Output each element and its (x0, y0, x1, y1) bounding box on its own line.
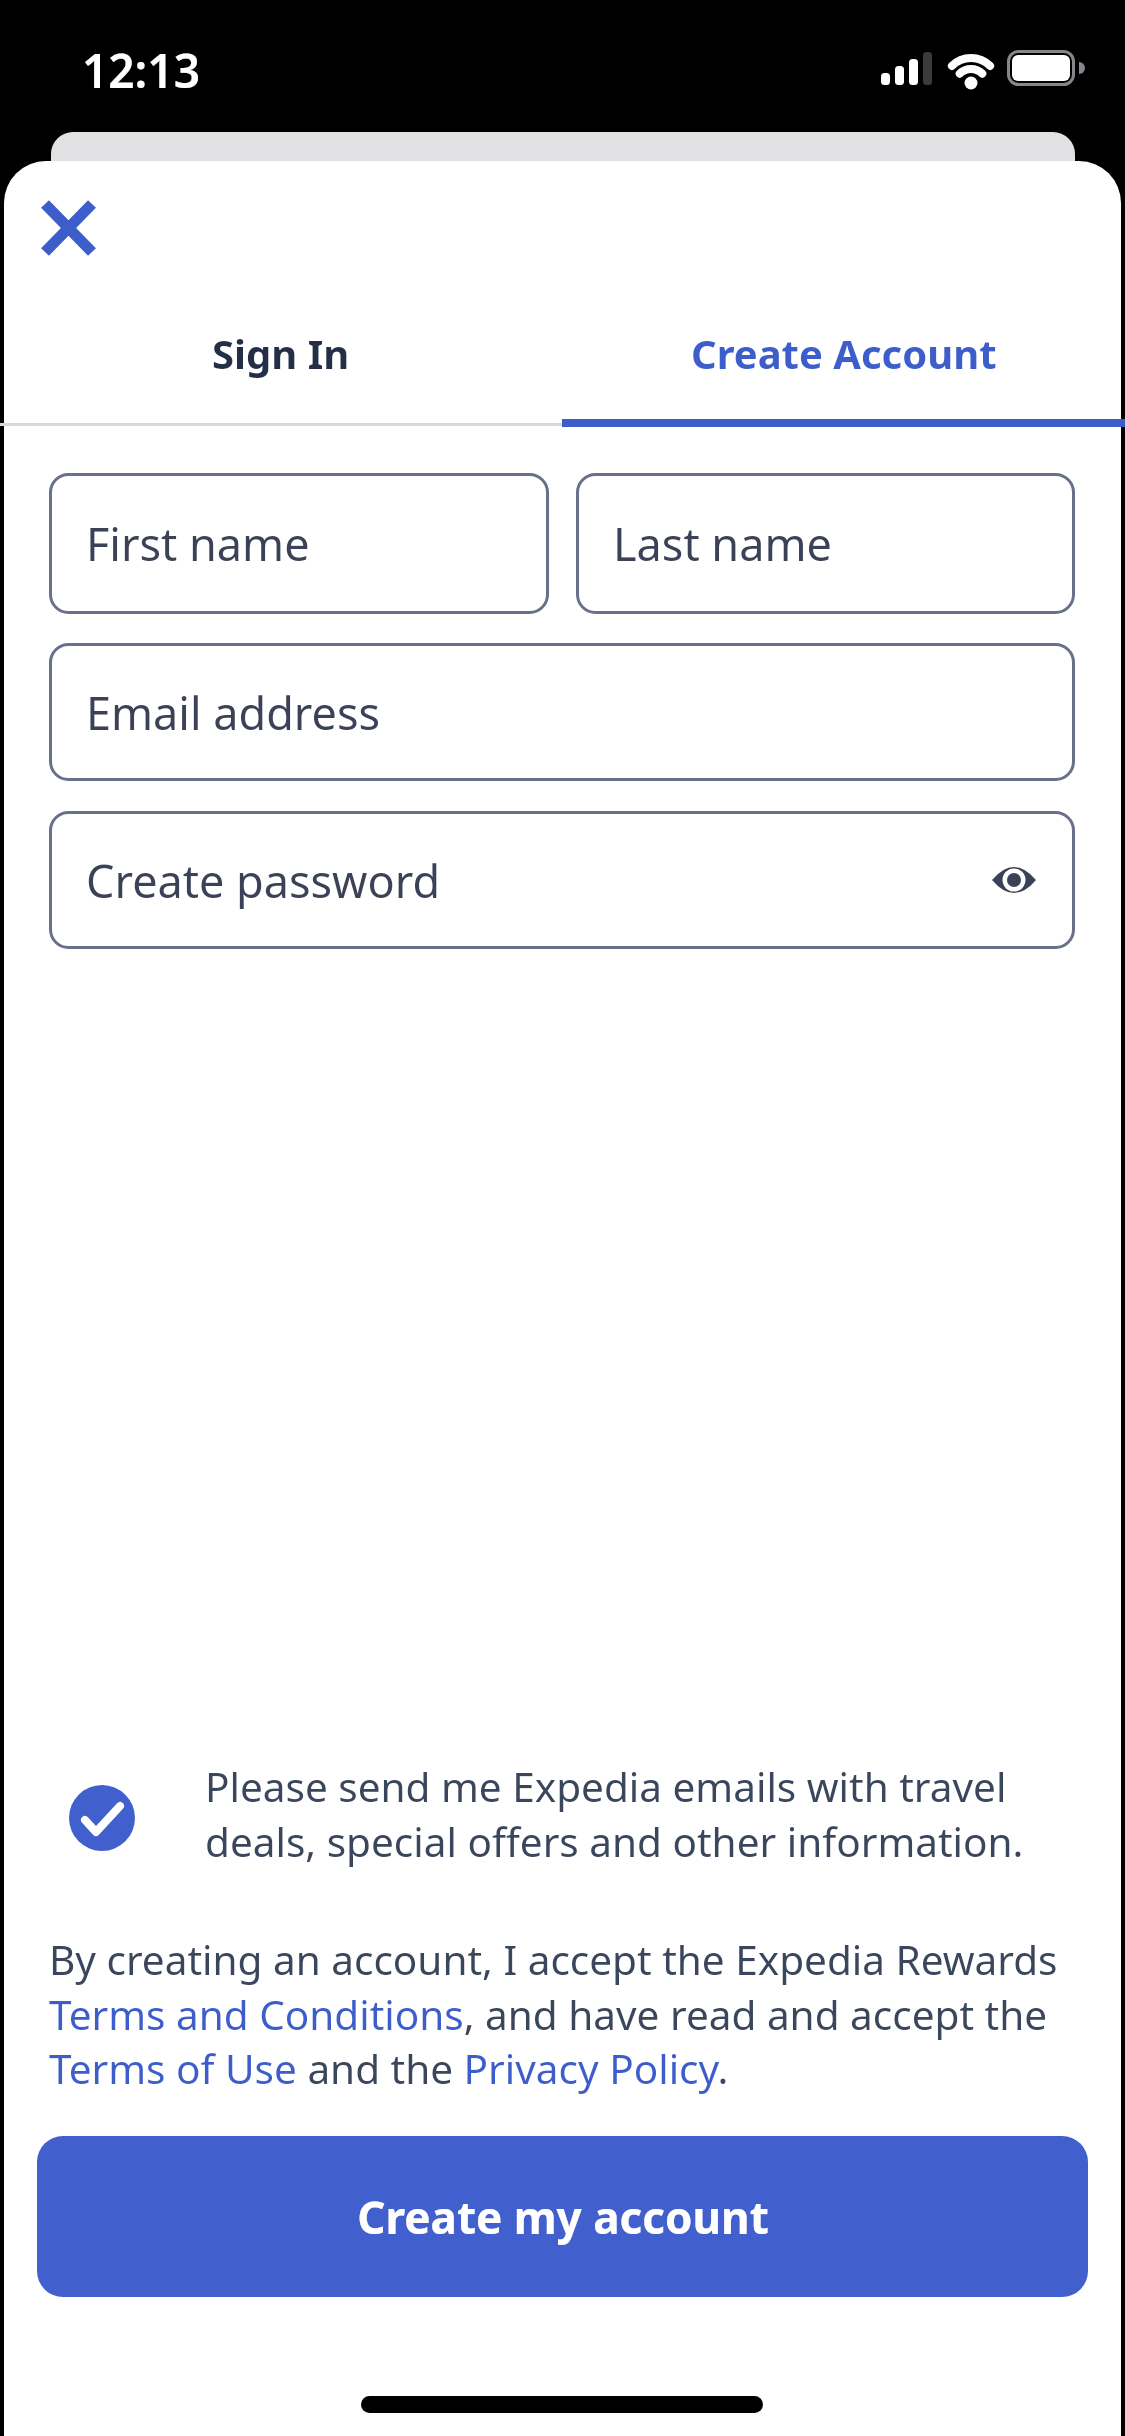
button[interactable]: Please send me Expedia emails with trave… (49, 1764, 1079, 1904)
staticText: 12:13 (82, 39, 200, 102)
button[interactable]: First name (49, 473, 549, 614)
button[interactable]: Create Account (562, 323, 1125, 383)
button[interactable]: Create my account (37, 2136, 1088, 2297)
button[interactable]: By creating an account, I accept the Exp… (49, 1932, 1125, 2096)
button[interactable]: Sign In (0, 323, 562, 383)
staticText: Last name (613, 513, 832, 574)
staticText: Create password (86, 850, 441, 911)
staticText: First name (86, 513, 310, 574)
button[interactable] (30, 190, 106, 266)
button[interactable]: Email address (49, 643, 1075, 781)
button[interactable]: Last name (576, 473, 1075, 614)
staticText: Please send me Expedia emails with trave… (205, 1759, 1024, 1869)
staticText: Create Account (691, 326, 997, 380)
button[interactable]: Create password (49, 811, 1075, 949)
staticText: Sign In (212, 326, 350, 380)
staticText: Create my account (357, 2187, 769, 2247)
staticText: Email address (86, 682, 381, 743)
